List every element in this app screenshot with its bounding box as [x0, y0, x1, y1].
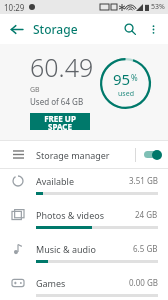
button[interactable]: Games — [0, 271, 168, 300]
staticText: 24 GB — [135, 209, 158, 220]
button[interactable]: More options — [142, 18, 164, 40]
staticText: Used of 64 GB — [30, 96, 84, 107]
staticText: 60.49 — [30, 50, 94, 84]
staticText: % — [131, 72, 138, 83]
staticText: 95 — [113, 69, 131, 89]
button[interactable]: Storage manager — [0, 141, 168, 168]
button[interactable]: Photos & videos — [0, 203, 168, 237]
button[interactable]: Music & audio — [0, 237, 168, 271]
staticText: Music & audio — [36, 243, 96, 255]
staticText: 10:29 — [4, 2, 25, 13]
button[interactable]: Back — [4, 17, 28, 41]
button[interactable]: Storage manager toggle — [136, 141, 168, 168]
staticText: Storage — [33, 21, 78, 37]
staticText: 53% — [151, 2, 165, 12]
staticText: Photos & videos — [36, 209, 104, 221]
staticText: Games — [36, 277, 66, 289]
button[interactable]: Search — [118, 17, 142, 41]
staticText: 3.51 GB — [129, 175, 158, 186]
staticText: 0.00 GB — [129, 277, 158, 288]
staticText: Storage manager — [36, 149, 110, 161]
button[interactable]: Available — [0, 169, 168, 203]
staticText: Available — [36, 175, 74, 187]
staticText: used — [118, 89, 134, 99]
staticText: 6.5 GB — [133, 243, 158, 254]
staticText: GB — [30, 85, 40, 95]
staticText: FREE UP SPACE — [44, 113, 76, 130]
button[interactable]: FREE UP SPACE — [30, 113, 90, 130]
